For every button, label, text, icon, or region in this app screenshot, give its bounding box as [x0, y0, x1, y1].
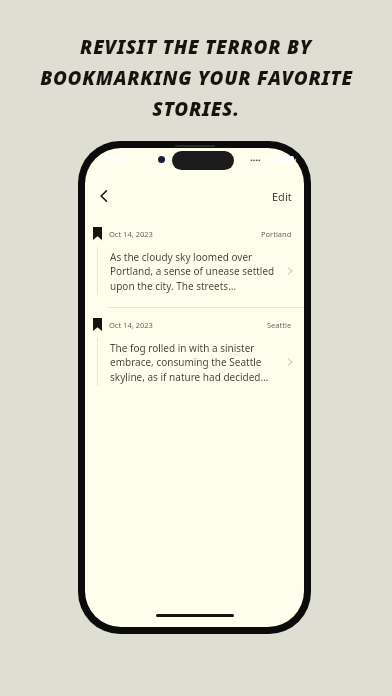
staticText: As the cloudy sky loomed over Portland, …	[110, 250, 280, 293]
button[interactable]: Oct 14, 2023	[85, 227, 304, 295]
staticText: REVISIT THE TERROR BY	[80, 34, 312, 60]
staticText: Seattle	[267, 320, 292, 330]
staticText: Oct 14, 2023	[109, 320, 153, 330]
staticText: The fog rolled in with a sinister embrac…	[110, 341, 280, 384]
staticText: Edit	[272, 189, 292, 204]
staticText: BOOKMARKING YOUR FAVORITE	[40, 65, 353, 91]
button[interactable]: Back	[89, 181, 119, 211]
staticText: 2:31	[103, 152, 125, 167]
button[interactable]: Oct 14, 2023	[85, 318, 304, 386]
button[interactable]: Edit	[266, 185, 298, 208]
staticText: Portland	[261, 229, 292, 239]
staticText: Oct 14, 2023	[109, 229, 153, 239]
staticText: STORIES.	[152, 96, 240, 122]
